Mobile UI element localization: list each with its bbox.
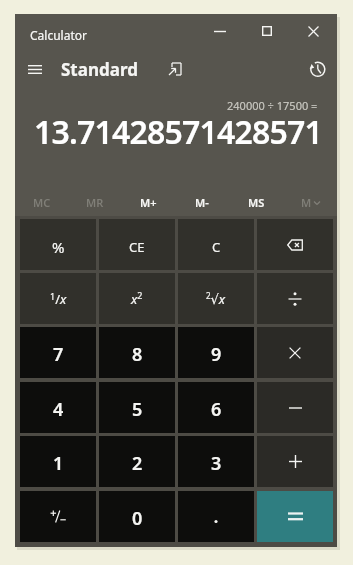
button[interactable]: 2 — [99, 436, 175, 487]
button[interactable] — [257, 436, 333, 487]
staticText: 2√x — [206, 290, 226, 308]
staticText: 3 — [211, 451, 222, 476]
staticText: 4 — [53, 397, 64, 422]
button[interactable]: M — [283, 190, 337, 215]
button[interactable]: 7 — [20, 327, 96, 378]
button[interactable] — [257, 219, 333, 270]
button[interactable] — [257, 327, 333, 378]
button[interactable] — [257, 273, 333, 324]
button[interactable]: 8 — [99, 327, 175, 378]
button[interactable]: MC — [15, 190, 68, 215]
button[interactable] — [21, 56, 49, 82]
staticText: 13.71428571428571 — [34, 110, 323, 154]
staticText: MR — [86, 195, 104, 210]
staticText: x2 — [131, 289, 143, 308]
button[interactable] — [250, 18, 284, 44]
staticText: M+ — [140, 195, 157, 210]
staticText: 1 — [53, 451, 64, 476]
staticText: 0 — [132, 506, 143, 531]
staticText: CE — [129, 238, 145, 256]
button[interactable]: 0 — [99, 491, 175, 542]
button[interactable]: CE — [99, 219, 175, 270]
staticText: Calculator — [30, 27, 87, 43]
button[interactable]: 5 — [99, 382, 175, 433]
button[interactable]: 6 — [178, 382, 254, 433]
button[interactable]: M- — [175, 190, 229, 215]
button[interactable] — [162, 56, 188, 82]
button[interactable]: 1/x — [20, 273, 96, 324]
staticText: 1/x — [50, 290, 67, 308]
staticText: 9 — [211, 342, 222, 367]
button[interactable] — [257, 382, 333, 433]
staticText: 6 — [211, 397, 222, 422]
button[interactable]: M+ — [121, 190, 175, 215]
button[interactable]: 2√x — [178, 273, 254, 324]
button[interactable]: 1 — [20, 436, 96, 487]
button[interactable] — [257, 491, 333, 542]
staticText: MS — [248, 195, 265, 210]
staticText: MC — [33, 195, 51, 210]
button[interactable]: x2 — [99, 273, 175, 324]
button[interactable] — [203, 18, 237, 44]
button[interactable] — [302, 54, 332, 84]
button[interactable] — [20, 491, 96, 542]
staticText: Standard — [61, 58, 138, 81]
staticText: 7 — [53, 342, 64, 367]
button[interactable]: MS — [229, 190, 283, 215]
button[interactable]: 3 — [178, 436, 254, 487]
staticText: 8 — [132, 342, 143, 367]
staticText: 240000 ÷ 17500 = — [227, 98, 318, 113]
button[interactable]: 9 — [178, 327, 254, 378]
button[interactable]: 4 — [20, 382, 96, 433]
staticText: M — [301, 195, 312, 210]
button[interactable] — [296, 18, 330, 44]
button[interactable]: C — [178, 219, 254, 270]
staticText: 5 — [132, 397, 143, 422]
staticText: 2 — [132, 451, 143, 476]
button[interactable]: MR — [68, 190, 121, 215]
button[interactable]: % — [20, 219, 96, 270]
button[interactable] — [178, 491, 254, 542]
staticText: % — [52, 237, 65, 257]
staticText: M- — [195, 195, 209, 210]
staticText: C — [212, 238, 221, 256]
